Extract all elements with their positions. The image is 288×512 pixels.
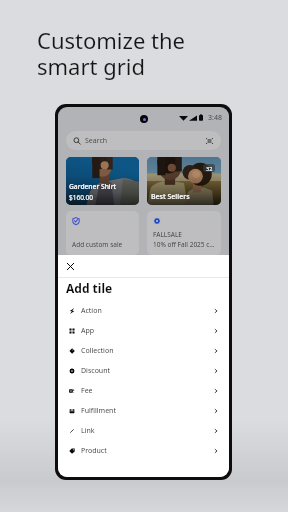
staticText: Customize the smart grid — [37, 25, 185, 81]
staticText: Fulfillment — [81, 406, 116, 416]
button[interactable]: Close — [63, 259, 78, 274]
button[interactable]: FALLSALE — [147, 211, 221, 255]
staticText: FALLSALE — [153, 230, 182, 239]
staticText: Search — [85, 136, 108, 146]
button[interactable]: Collection — [58, 341, 229, 361]
button[interactable]: Fee — [58, 381, 229, 401]
button[interactable]: Fulfillment — [58, 401, 229, 421]
staticText: Fee — [81, 386, 93, 396]
button[interactable]: Product — [58, 441, 229, 461]
staticText: App — [81, 326, 95, 336]
staticText: Link — [81, 426, 95, 436]
button[interactable]: Action — [58, 301, 229, 321]
staticText: Discount — [81, 366, 111, 376]
button[interactable]: App — [58, 321, 229, 341]
button[interactable]: Search — [66, 131, 221, 150]
button[interactable]: Link — [58, 421, 229, 441]
button[interactable]: Best Sellers — [147, 157, 221, 205]
button[interactable]: Discount — [58, 361, 229, 381]
staticText: Collection — [81, 346, 114, 356]
button[interactable]: Gardener Shirt — [66, 157, 139, 205]
staticText: 3:48 — [208, 113, 222, 123]
staticText: Best Sellers — [151, 192, 190, 202]
staticText: 32 — [206, 165, 213, 172]
staticText: Add tile — [66, 280, 113, 296]
staticText: Action — [81, 306, 102, 316]
staticText: $160.00 — [69, 193, 94, 202]
staticText: Product — [81, 446, 107, 456]
button[interactable]: Add custom sale — [66, 211, 139, 255]
staticText: Gardener Shirt — [69, 182, 117, 191]
staticText: 10% off Fall 2025 c... — [153, 240, 215, 249]
staticText: Add custom sale — [72, 240, 123, 249]
